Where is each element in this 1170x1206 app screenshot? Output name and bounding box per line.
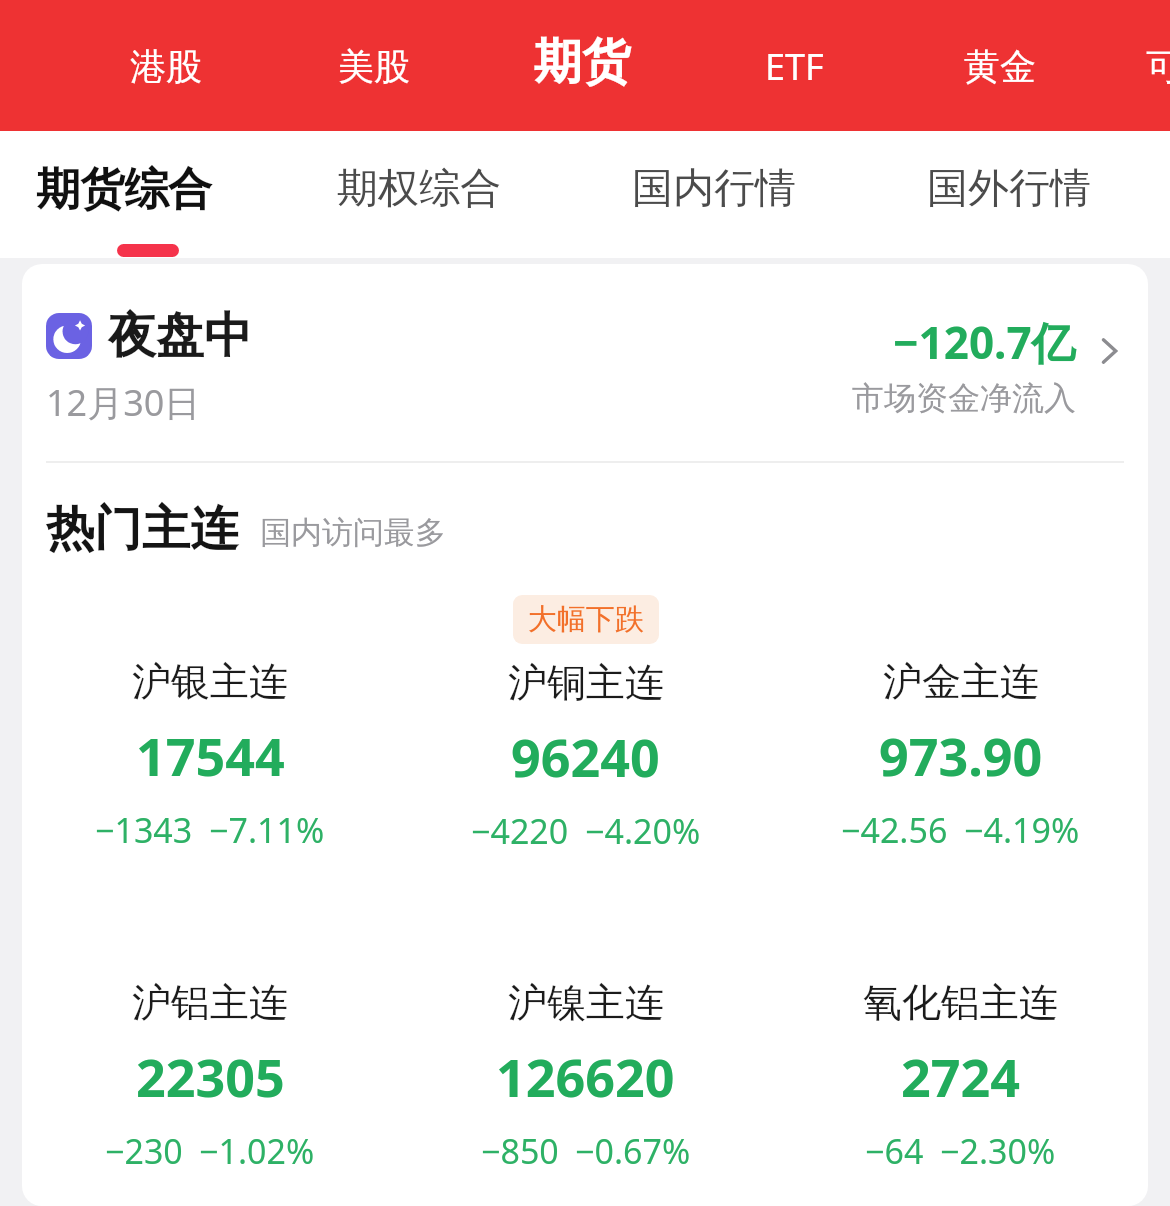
staticText: 17544: [136, 720, 285, 791]
staticText: 沪铝主连: [132, 978, 288, 1027]
staticText: 美股: [338, 44, 410, 89]
staticText: 国内访问最多: [260, 513, 446, 552]
staticText: 沪金主连: [883, 657, 1039, 706]
staticText: −42.56: [841, 807, 948, 853]
button[interactable]: 美股: [322, 38, 426, 94]
button[interactable]: 沪镍主连: [398, 916, 773, 1174]
staticText: 夜盘中: [108, 306, 252, 366]
button[interactable]: 期权综合: [337, 153, 537, 225]
staticText: 126620: [496, 1041, 675, 1112]
staticText: 2724: [901, 1041, 1020, 1112]
staticText: 黄金: [964, 44, 1036, 89]
button[interactable]: ETF: [742, 38, 846, 94]
staticText: 市场资金净流入: [852, 378, 1076, 418]
staticText: −1.02%: [199, 1128, 315, 1174]
staticText: 国内行情: [632, 163, 796, 215]
staticText: 沪银主连: [132, 657, 288, 706]
staticText: 期权综合: [337, 163, 501, 215]
staticText: 港股: [130, 44, 202, 89]
button[interactable]: 沪铝主连: [22, 916, 398, 1174]
staticText: 国外行情: [927, 163, 1091, 215]
staticText: −1343: [95, 807, 193, 853]
button[interactable]: 期货综合: [36, 151, 256, 227]
button[interactable]: 港股: [114, 38, 218, 94]
staticText: −4.19%: [964, 807, 1080, 853]
staticText: ETF: [765, 42, 824, 91]
button[interactable]: 可: [1146, 38, 1170, 94]
staticText: 12月30日: [46, 378, 201, 427]
staticText: −4.20%: [585, 808, 701, 854]
staticText: −4220: [471, 808, 569, 854]
button[interactable]: 沪金主连: [773, 595, 1148, 853]
button[interactable]: 沪银主连: [22, 595, 398, 853]
staticText: −2.30%: [940, 1128, 1056, 1174]
staticText: 沪镍主连: [508, 978, 664, 1027]
staticText: 大幅下跌: [528, 601, 644, 638]
button[interactable]: 大幅下跌: [398, 595, 773, 854]
staticText: −0.67%: [575, 1128, 691, 1174]
button[interactable]: 国外行情: [927, 153, 1127, 225]
button[interactable]: 热门主连: [46, 499, 1148, 559]
staticText: 氧化铝主连: [863, 978, 1058, 1027]
staticText: 期货综合: [36, 162, 212, 217]
button[interactable]: 氧化铝主连: [773, 916, 1148, 1174]
button[interactable]: 夜盘中: [22, 306, 1148, 427]
staticText: −850: [481, 1128, 559, 1174]
staticText: 973.90: [879, 720, 1043, 791]
staticText: 可: [1146, 44, 1170, 89]
button[interactable]: 市场资金净流入详情: [1086, 328, 1132, 374]
staticText: −64: [865, 1128, 924, 1174]
button[interactable]: 黄金: [948, 38, 1052, 94]
staticText: −120.7亿: [893, 312, 1076, 372]
staticText: 96240: [511, 721, 660, 792]
staticText: 热门主连: [46, 499, 238, 559]
staticText: −230: [105, 1128, 183, 1174]
button[interactable]: 国内行情: [632, 153, 832, 225]
staticText: 期货: [534, 32, 630, 92]
button[interactable]: 期货: [506, 22, 658, 102]
staticText: 22305: [136, 1041, 285, 1112]
staticText: 沪铜主连: [508, 658, 664, 707]
staticText: −7.11%: [209, 807, 325, 853]
